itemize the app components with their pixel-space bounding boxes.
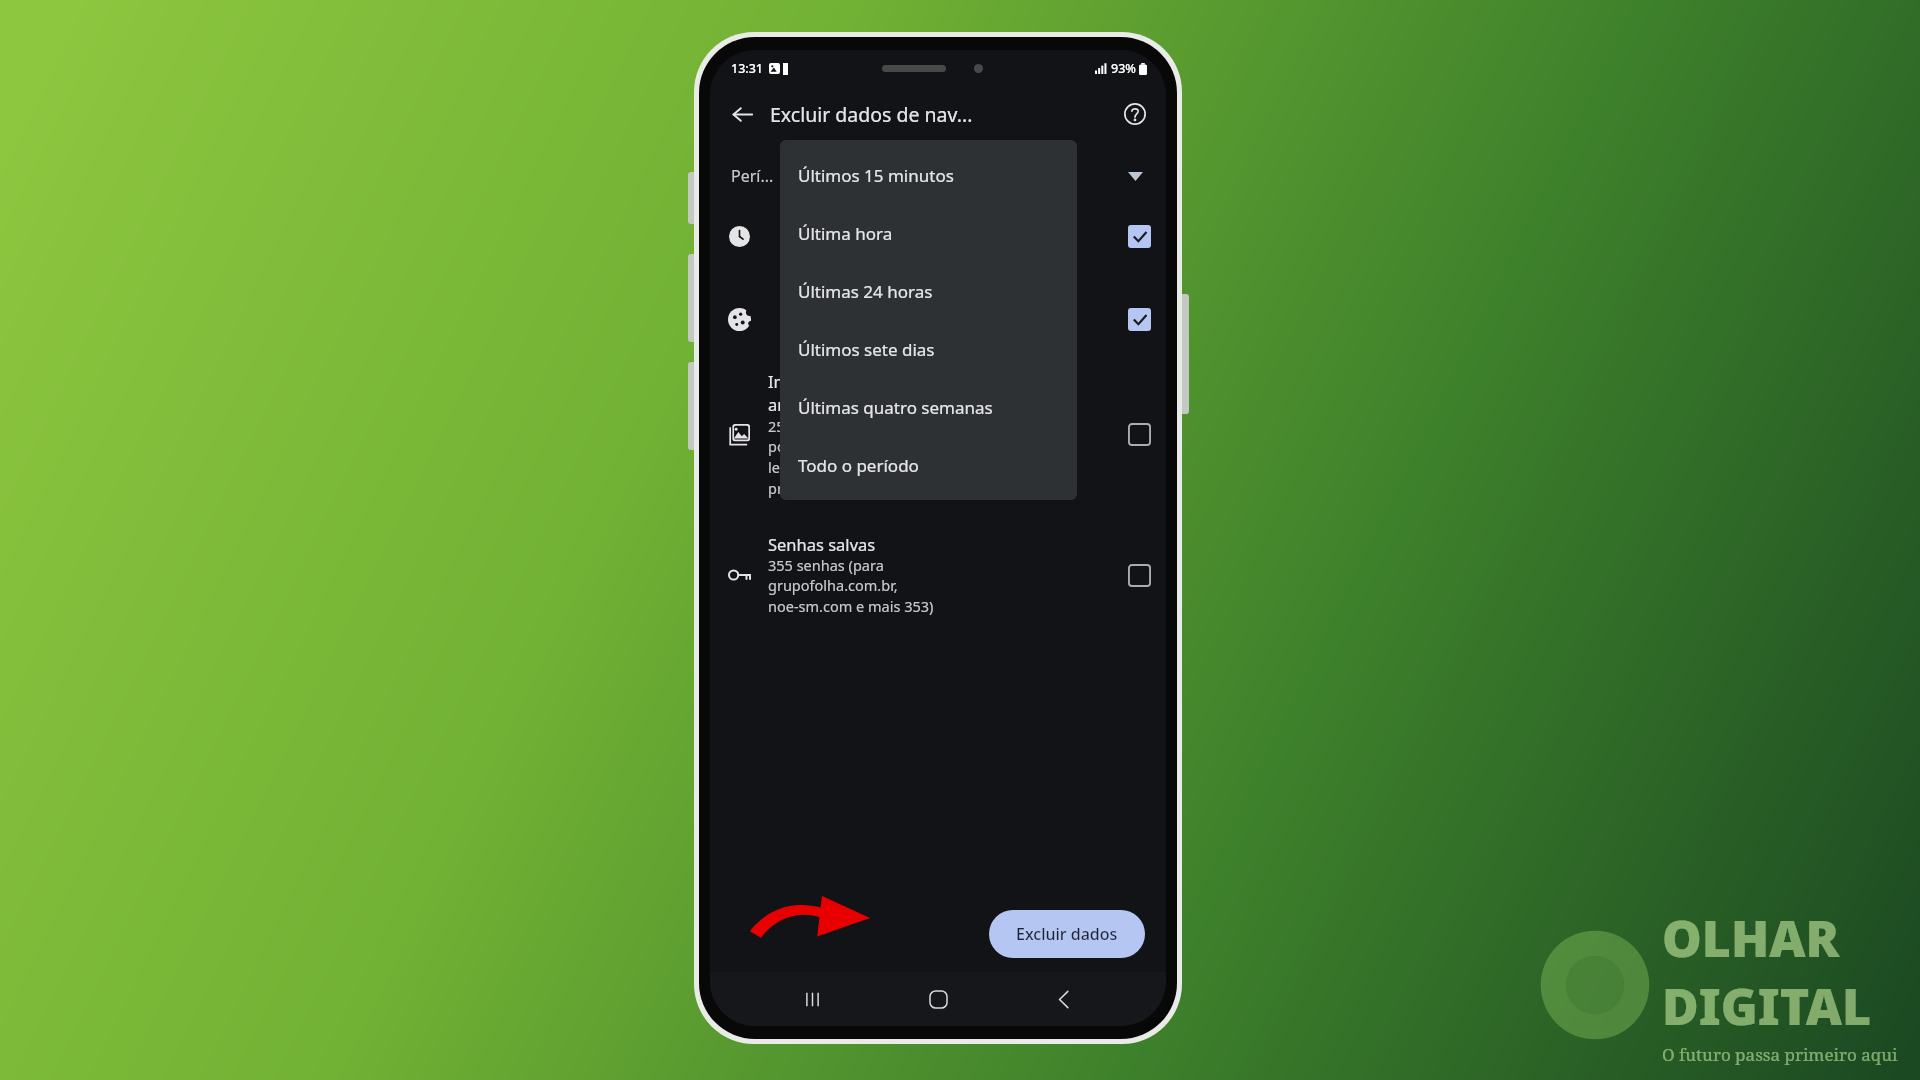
staticText: 13:31 bbox=[731, 60, 764, 77]
button[interactable]: Desmarcado bbox=[1128, 564, 1151, 587]
staticText: Todo o período bbox=[798, 454, 919, 477]
button[interactable]: Últimas 24 horas bbox=[780, 262, 1077, 320]
staticText: Senhas salvas bbox=[768, 533, 876, 555]
button[interactable]: Últimas quatro semanas bbox=[780, 378, 1077, 436]
staticText: Última hora bbox=[798, 222, 893, 245]
staticText: Últimas quatro semanas bbox=[798, 396, 993, 419]
staticText: Imagens e arquivos armazenados em cache bbox=[768, 370, 952, 416]
staticText: Últimos 15 minutos bbox=[798, 164, 954, 187]
button[interactable]: Voltar bbox=[1040, 975, 1088, 1023]
staticText: Últimas 24 horas bbox=[798, 280, 933, 303]
button[interactable]: Marcado bbox=[1128, 308, 1151, 331]
button[interactable]: Ajuda bbox=[1115, 94, 1155, 134]
staticText: Excluir dados bbox=[1016, 923, 1118, 945]
button[interactable]: Excluir dados bbox=[989, 910, 1145, 958]
staticText: Perí... bbox=[731, 165, 774, 187]
staticText: Últimos sete dias bbox=[798, 338, 935, 361]
button[interactable]: Desmarcado bbox=[1128, 423, 1151, 446]
button[interactable]: Última hora bbox=[780, 204, 1077, 262]
staticText: Excluir dados de nav... bbox=[770, 101, 973, 128]
button[interactable]: Todo o período bbox=[780, 436, 1077, 494]
button[interactable]: Últimos 15 minutos bbox=[780, 146, 1077, 204]
button[interactable]: Marcado bbox=[710, 272, 1166, 366]
staticText: 355 senhas (para grupofolha.com.br, noe-… bbox=[768, 555, 934, 617]
staticText: 93% bbox=[1111, 60, 1136, 77]
button[interactable]: Voltar bbox=[721, 93, 763, 135]
button[interactable]: Imagens e arquivos armazenados em cache bbox=[710, 366, 1166, 503]
button[interactable]: Marcado bbox=[1128, 225, 1151, 248]
staticText: OLHAR bbox=[1662, 904, 1840, 972]
button[interactable]: Senhas salvas bbox=[710, 529, 1166, 621]
button[interactable]: Marcado bbox=[710, 200, 1166, 272]
button[interactable]: Recentes bbox=[788, 975, 836, 1023]
button[interactable]: Início bbox=[914, 975, 962, 1023]
button[interactable]: Últimos sete dias bbox=[780, 320, 1077, 378]
button[interactable]: Perí... bbox=[710, 152, 1166, 200]
staticText: O futuro passa primeiro aqui bbox=[1662, 1043, 1898, 1066]
staticText: DIGITAL bbox=[1662, 972, 1872, 1040]
staticText: 255 MB. Alguns sites podem carregar mais… bbox=[768, 416, 915, 499]
